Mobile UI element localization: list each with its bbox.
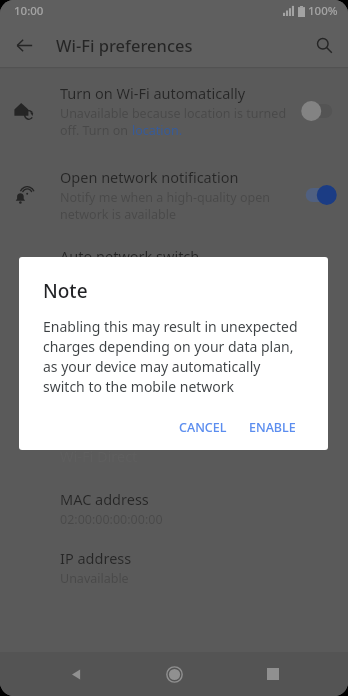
button[interactable]: Back [6, 27, 42, 63]
staticText: Unavailable because location is turned [60, 105, 287, 122]
button[interactable]: ENABLE [241, 412, 304, 443]
staticText: Enabling this may result in unexpected c… [43, 317, 304, 396]
button[interactable]: Home [151, 652, 197, 696]
staticText: Install certificates [60, 357, 180, 377]
button[interactable]: IP address [0, 538, 348, 597]
staticText: off. Turn on [60, 122, 132, 139]
button[interactable]: Install certificates [0, 347, 348, 387]
staticText: Wi-Fi Direct [60, 446, 138, 466]
staticText: IP address [60, 548, 132, 568]
button[interactable]: Wi-Fi Direct [0, 433, 348, 479]
button[interactable]: Connect via Wi-Fi hotspot [0, 307, 348, 347]
staticText: Connect via Wi-Fi hotspot [60, 317, 233, 337]
button[interactable]: Toggle on [298, 182, 340, 208]
button: Note [19, 257, 328, 450]
staticText: Open network notification [60, 167, 239, 187]
staticText: ENABLE [249, 419, 296, 436]
staticText: Auto network switch [60, 246, 200, 266]
button[interactable]: Auto network switch [0, 240, 348, 307]
staticText: Wi-Fi preferences [56, 34, 193, 56]
button[interactable]: Network rating provider [0, 387, 348, 433]
staticText: Note [43, 278, 88, 304]
staticText: 10:00 [14, 3, 44, 19]
button[interactable]: Recent apps [250, 652, 296, 696]
staticText: 02:00:00:00:00:00 [60, 511, 163, 528]
staticText: CANCEL [179, 419, 227, 436]
button[interactable]: MAC address [0, 479, 348, 538]
staticText: Notify me when a high-quality open netwo… [60, 189, 270, 222]
staticText: Unavailable [60, 570, 129, 587]
staticText: Automatically switch to a preferred netw… [60, 268, 266, 301]
staticText: 100% [308, 3, 338, 19]
button[interactable]: Toggle off [298, 98, 340, 124]
button[interactable]: Open network notification [0, 159, 348, 230]
button[interactable]: Turn on Wi-Fi automatically [0, 75, 348, 147]
staticText: location. [132, 122, 183, 139]
button[interactable]: CANCEL [171, 412, 235, 443]
staticText: Turn on Wi-Fi automatically [60, 83, 246, 103]
button[interactable]: Back [53, 652, 99, 696]
staticText: MAC address [60, 489, 149, 509]
button[interactable]: Search [306, 27, 342, 63]
